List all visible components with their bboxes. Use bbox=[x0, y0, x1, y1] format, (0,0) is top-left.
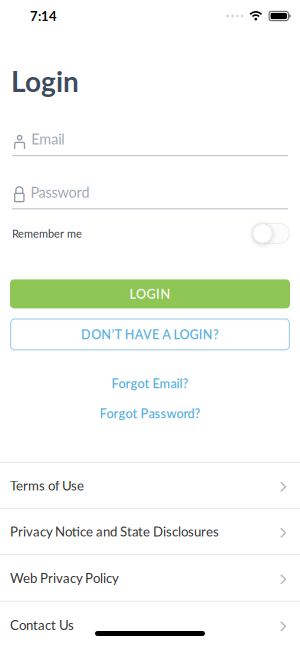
staticText: Forgot Email? bbox=[111, 376, 188, 391]
staticText: Login bbox=[11, 64, 79, 98]
button[interactable]: Privacy Notice and State Disclosures bbox=[0, 509, 300, 554]
button[interactable]: Terms of Use bbox=[0, 463, 300, 508]
staticText: DON’T HAVE A LOGIN? bbox=[81, 327, 219, 342]
button[interactable]: LOGIN bbox=[10, 279, 290, 308]
staticText: Remember me bbox=[12, 227, 82, 240]
staticText: Forgot Password? bbox=[99, 406, 200, 421]
staticText: 7:14 bbox=[30, 8, 57, 24]
staticText: Password bbox=[31, 184, 90, 201]
staticText: Web Privacy Policy bbox=[10, 570, 119, 586]
staticText: Contact Us bbox=[10, 617, 74, 633]
button[interactable]: Forgot Password? bbox=[99, 405, 200, 421]
button[interactable]: DON’T HAVE A LOGIN? bbox=[10, 318, 290, 350]
staticText: Terms of Use bbox=[10, 477, 84, 493]
button[interactable]: Forgot Email? bbox=[111, 375, 188, 391]
button[interactable]: Remember me bbox=[252, 223, 290, 244]
staticText: Email bbox=[31, 130, 64, 148]
staticText: Privacy Notice and State Disclosures bbox=[10, 523, 219, 539]
staticText: LOGIN bbox=[129, 286, 170, 301]
button[interactable]: Contact Us bbox=[0, 602, 300, 648]
button[interactable]: Web Privacy Policy bbox=[0, 555, 300, 601]
